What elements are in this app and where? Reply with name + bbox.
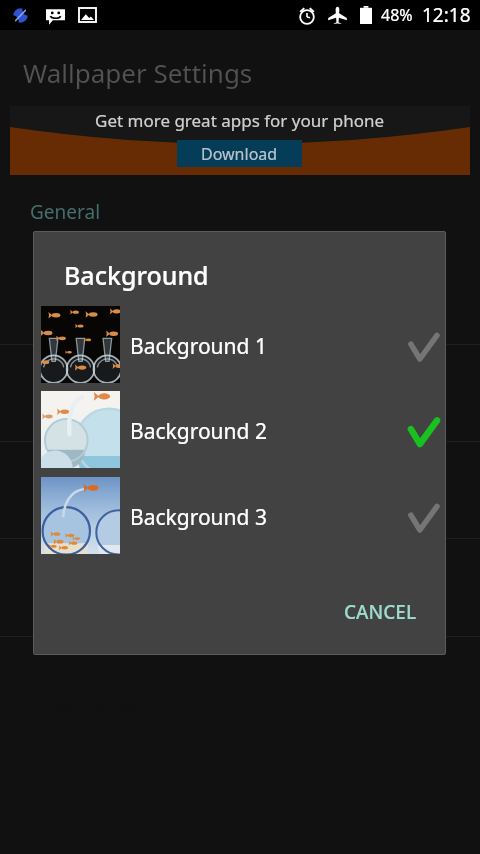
staticText: Choose wallpaper image	[40, 404, 214, 424]
button[interactable]: Bubbles	[0, 636, 480, 733]
staticText: Background 3	[130, 503, 267, 532]
staticText: Wallpaper Settings	[23, 55, 253, 90]
staticText: Download	[201, 143, 278, 165]
staticText: Background 1	[130, 332, 267, 361]
button[interactable]: Background 3	[33, 473, 446, 558]
staticText: 48%	[381, 4, 413, 26]
button[interactable]: Background	[0, 344, 480, 441]
button[interactable]: Fish count	[0, 538, 480, 635]
button[interactable]: CANCEL	[331, 591, 430, 633]
staticText: Background	[64, 258, 209, 292]
staticText: CANCEL	[344, 599, 417, 625]
staticText: General	[30, 199, 101, 225]
button[interactable]: Background 1	[33, 302, 446, 387]
staticText: Animation speed	[40, 501, 160, 521]
staticText: Background	[40, 369, 160, 398]
button[interactable]: Download	[177, 140, 302, 167]
staticText: Background 2	[130, 417, 267, 446]
button[interactable]: Speed	[0, 441, 480, 538]
staticText: Speed	[40, 466, 102, 495]
staticText: 12:18	[422, 2, 471, 28]
staticText: Get more great apps for your phone	[95, 109, 385, 132]
button[interactable]: Background 2	[33, 387, 446, 472]
